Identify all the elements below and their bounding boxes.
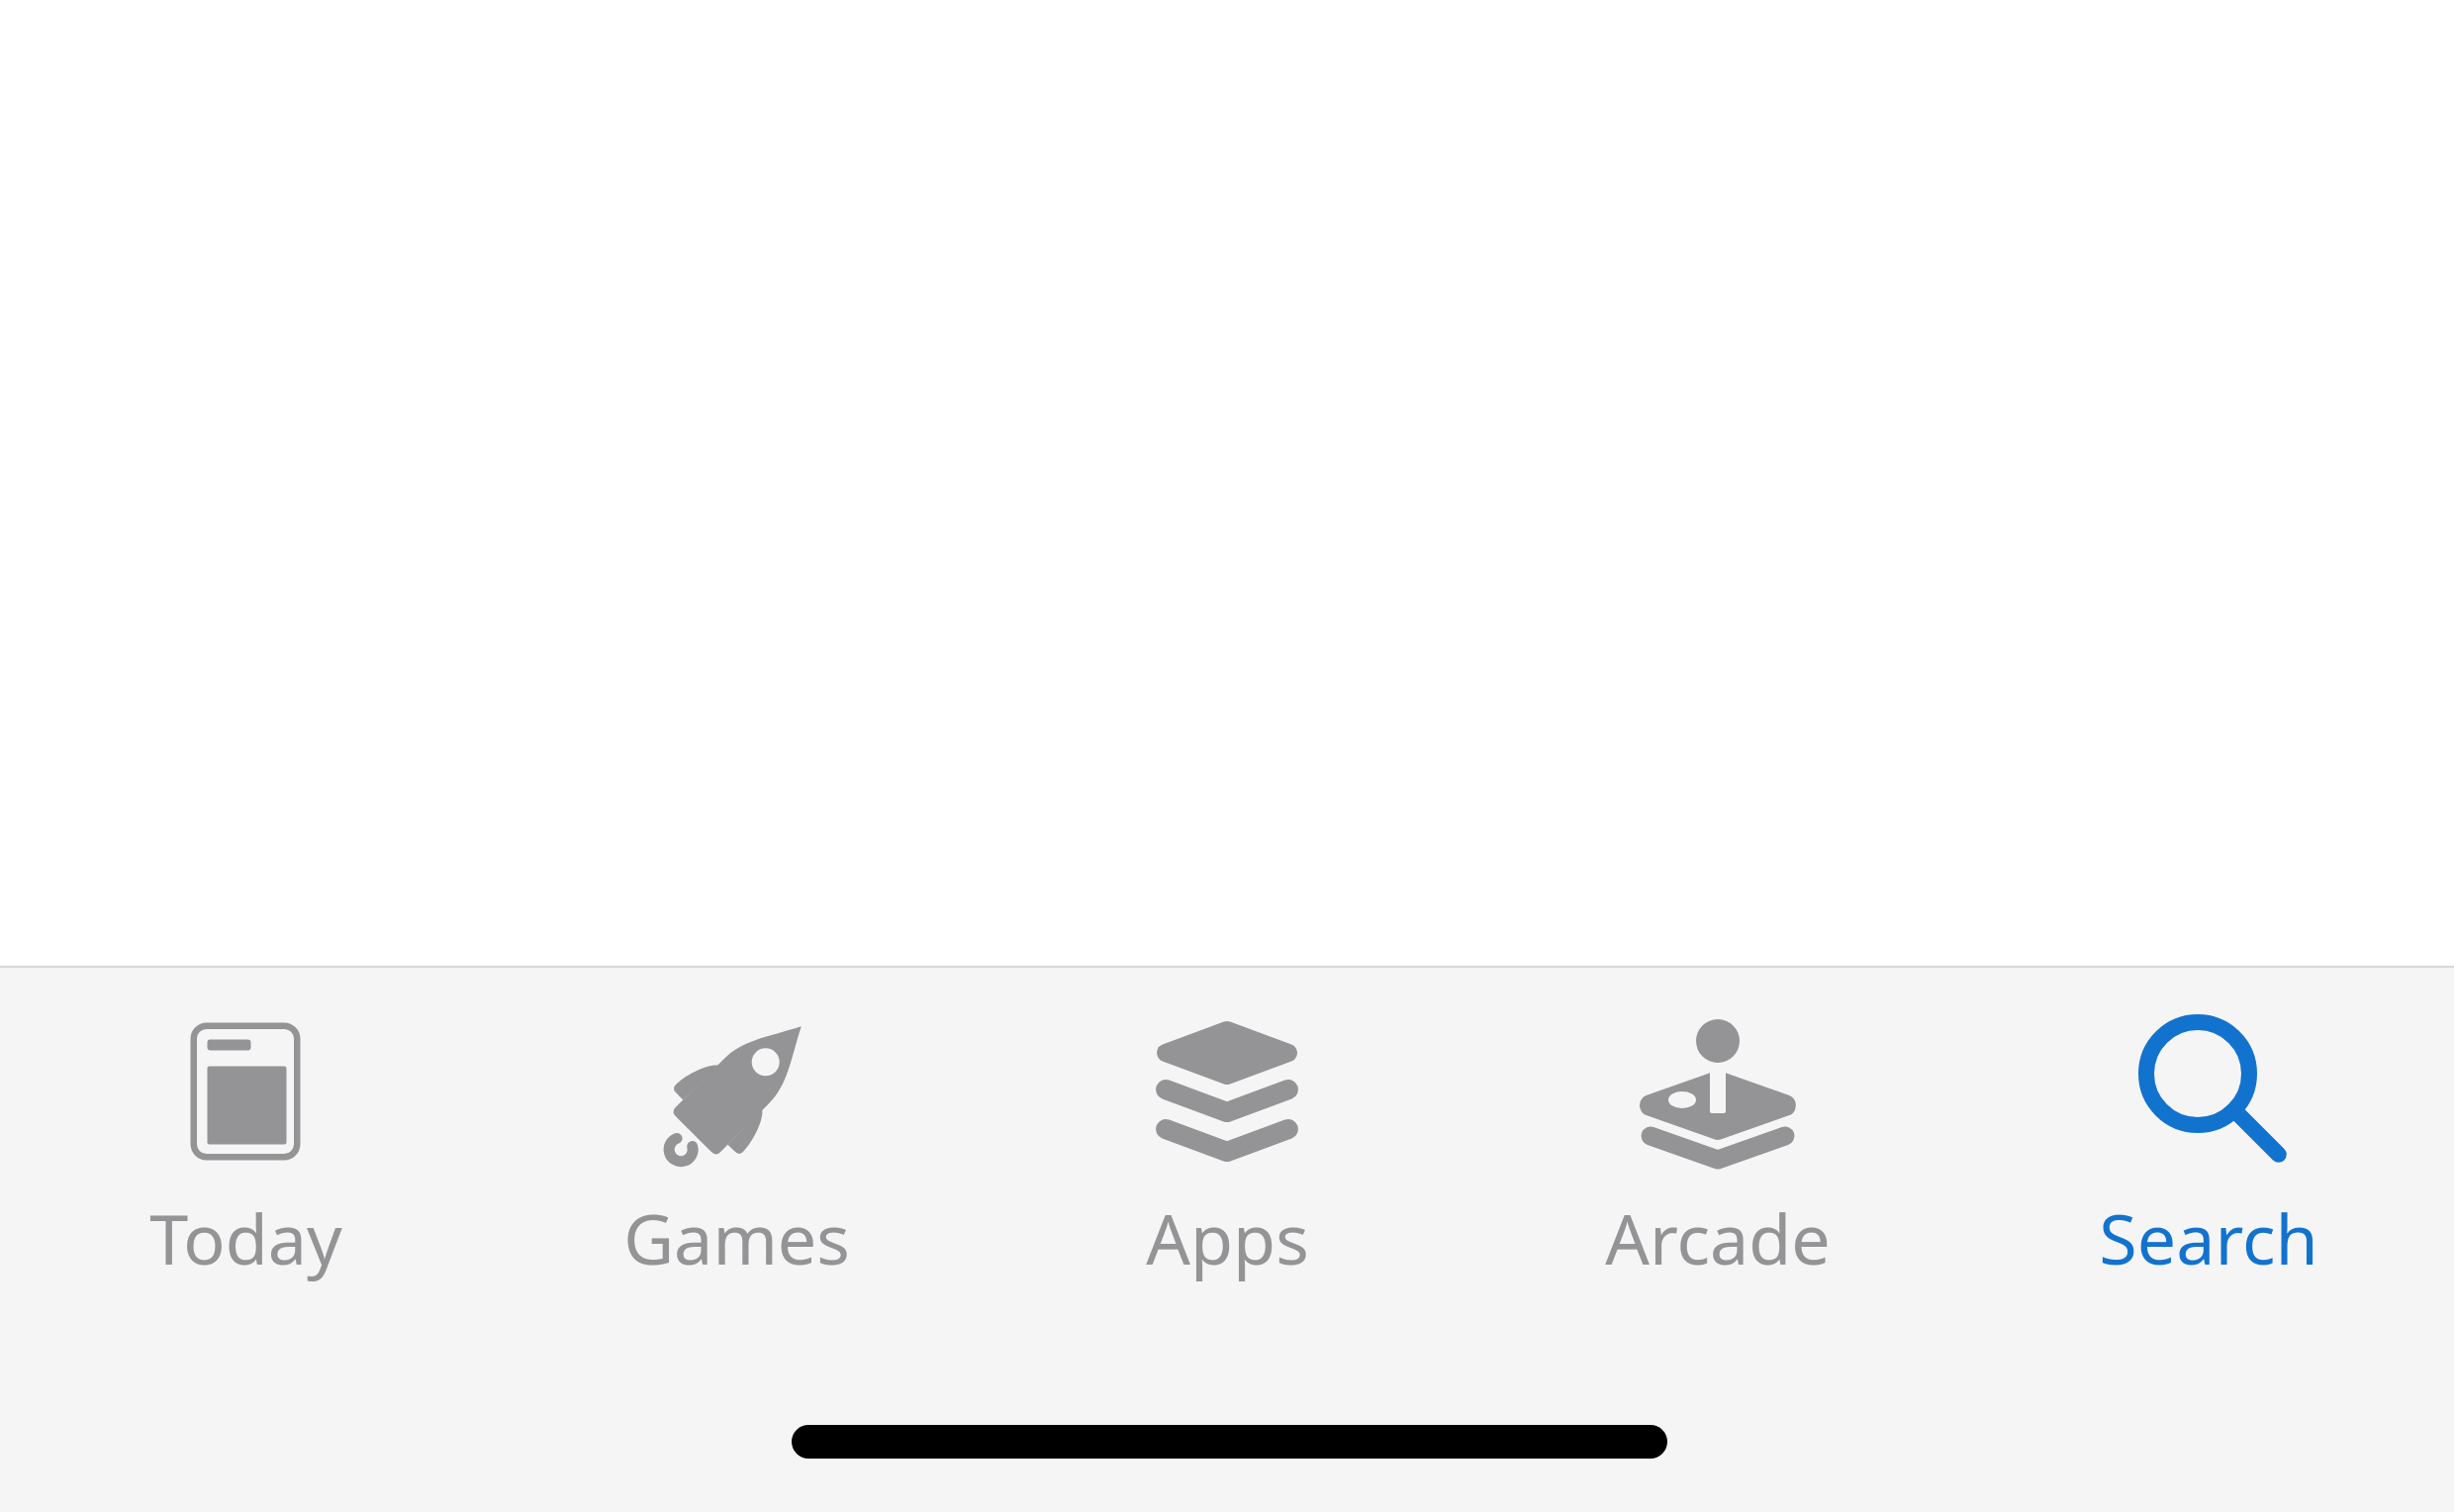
button[interactable]: Today (0, 968, 491, 1284)
button[interactable]: Search (1963, 968, 2454, 1284)
staticText: Today (149, 1190, 342, 1284)
button[interactable]: Apps (982, 968, 1472, 1284)
button[interactable]: Games (491, 968, 982, 1284)
staticText: Games (623, 1190, 850, 1284)
staticText: Search (2099, 1190, 2318, 1284)
button[interactable]: Arcade (1472, 968, 1963, 1284)
staticText: Arcade (1605, 1190, 1831, 1284)
staticText: Apps (1146, 1190, 1309, 1284)
